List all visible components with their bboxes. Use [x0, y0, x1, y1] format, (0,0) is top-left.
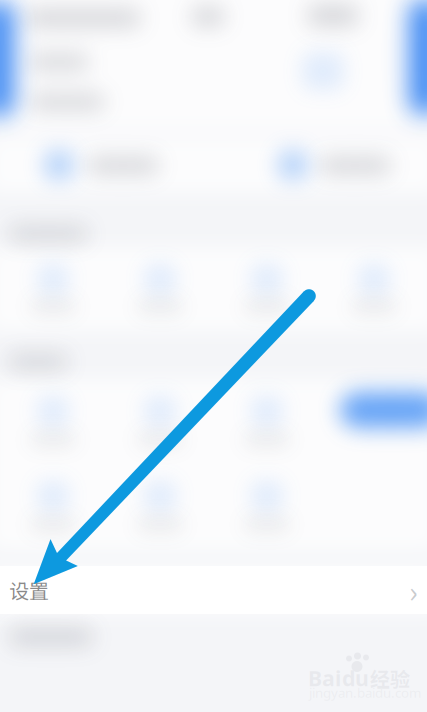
staticText: Bai: [308, 663, 341, 693]
button[interactable]: 设置: [0, 566, 427, 614]
staticText: du: [342, 663, 369, 693]
staticText: ›: [409, 569, 418, 611]
staticText: 经验: [370, 663, 410, 692]
staticText: 设置: [9, 575, 49, 604]
staticText: jingyan.baidu.com: [309, 683, 421, 702]
